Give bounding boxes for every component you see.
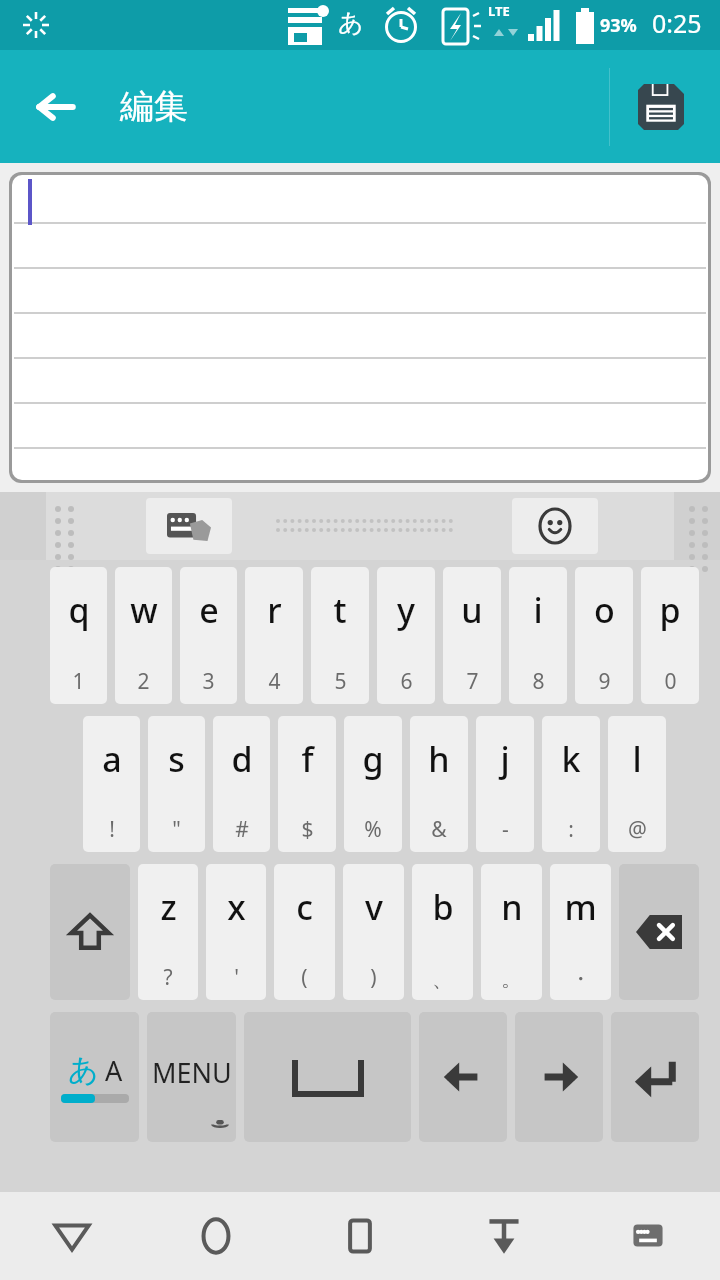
- button[interactable]: v: [343, 864, 404, 1000]
- staticText: 9: [598, 667, 611, 696]
- button[interactable]: g: [344, 716, 402, 852]
- button[interactable]: l: [608, 716, 666, 852]
- staticText: ): [370, 963, 377, 992]
- staticText: 編集: [120, 85, 188, 128]
- staticText: o: [594, 587, 615, 633]
- staticText: 8: [532, 667, 545, 696]
- button[interactable]: Cursor left: [419, 1012, 507, 1142]
- button[interactable]: r: [245, 567, 303, 704]
- button[interactable]: q: [50, 567, 107, 704]
- button[interactable]: MENU: [147, 1012, 236, 1142]
- staticText: 4: [268, 667, 281, 696]
- staticText: ・: [570, 966, 591, 992]
- staticText: t: [333, 587, 347, 633]
- button[interactable]: Keyboard switcher: [576, 1192, 720, 1280]
- staticText: A: [105, 1052, 123, 1089]
- button[interactable]: Switch input language: [50, 1012, 139, 1142]
- staticText: b: [432, 884, 454, 930]
- staticText: r: [267, 587, 282, 633]
- staticText: 3: [202, 667, 215, 696]
- button[interactable]: m: [550, 864, 611, 1000]
- button[interactable]: Save: [622, 68, 700, 146]
- staticText: &: [431, 815, 447, 844]
- staticText: c: [296, 884, 313, 930]
- button[interactable]: j: [476, 716, 534, 852]
- button[interactable]: n: [481, 864, 542, 1000]
- staticText: #: [235, 815, 249, 844]
- staticText: u: [461, 587, 483, 633]
- button[interactable]: w: [115, 567, 172, 704]
- staticText: 5: [334, 667, 347, 696]
- button[interactable]: Space: [244, 1012, 411, 1142]
- button[interactable]: Cursor right: [515, 1012, 603, 1142]
- button[interactable]: y: [377, 567, 435, 704]
- button[interactable]: Home: [144, 1192, 288, 1280]
- button[interactable]: p: [641, 567, 699, 704]
- staticText: あ: [68, 1051, 99, 1089]
- staticText: %: [364, 815, 382, 844]
- button[interactable]: Back: [0, 1192, 144, 1280]
- staticText: MENU: [152, 1054, 232, 1091]
- button[interactable]: c: [274, 864, 335, 1000]
- staticText: 7: [466, 667, 479, 696]
- button[interactable]: f: [278, 716, 336, 852]
- staticText: !: [109, 815, 115, 844]
- button[interactable]: d: [213, 716, 270, 852]
- staticText: d: [231, 736, 253, 782]
- staticText: m: [564, 884, 597, 930]
- staticText: s: [168, 736, 185, 782]
- staticText: ?: [163, 963, 173, 992]
- staticText: (: [301, 963, 308, 992]
- staticText: 6: [400, 667, 413, 696]
- staticText: あ: [338, 7, 364, 38]
- staticText: g: [362, 736, 384, 782]
- button[interactable]: Recents: [288, 1192, 432, 1280]
- button[interactable]: z: [138, 864, 198, 1000]
- staticText: a: [102, 736, 122, 782]
- staticText: 。: [501, 966, 522, 992]
- staticText: y: [397, 587, 415, 633]
- staticText: 1: [72, 667, 85, 696]
- button[interactable]: Handwriting input: [146, 498, 232, 554]
- staticText: 0: [664, 667, 677, 696]
- button[interactable]: Back: [22, 73, 90, 141]
- staticText: v: [365, 884, 383, 930]
- staticText: k: [561, 736, 581, 782]
- staticText: -: [502, 815, 509, 844]
- button[interactable]: Hide keyboard: [432, 1192, 576, 1280]
- button[interactable]: Enter: [611, 1012, 699, 1142]
- staticText: :: [568, 815, 574, 844]
- button[interactable]: u: [443, 567, 501, 704]
- button[interactable]: [12, 175, 708, 480]
- button[interactable]: o: [575, 567, 633, 704]
- staticText: 93%: [600, 13, 637, 38]
- staticText: LTE: [488, 2, 510, 20]
- button[interactable]: Shift: [50, 864, 130, 1000]
- staticText: p: [659, 587, 681, 633]
- staticText: 、: [432, 966, 453, 992]
- staticText: h: [428, 736, 450, 782]
- button[interactable]: a: [83, 716, 140, 852]
- button[interactable]: b: [412, 864, 473, 1000]
- staticText: f: [301, 736, 314, 782]
- button[interactable]: x: [206, 864, 266, 1000]
- staticText: j: [500, 736, 510, 782]
- staticText: 0:25: [652, 6, 702, 40]
- staticText: e: [199, 587, 219, 633]
- staticText: @: [628, 815, 647, 844]
- button[interactable]: e: [180, 567, 237, 704]
- staticText: z: [160, 884, 177, 930]
- staticText: n: [501, 884, 523, 930]
- button[interactable]: h: [410, 716, 468, 852]
- button[interactable]: k: [542, 716, 600, 852]
- staticText: x: [227, 884, 246, 930]
- button[interactable]: Emoji: [512, 498, 598, 554]
- button[interactable]: Backspace: [619, 864, 699, 1000]
- staticText: q: [68, 587, 90, 633]
- button[interactable]: t: [311, 567, 369, 704]
- staticText: 2: [137, 667, 150, 696]
- button[interactable]: s: [148, 716, 205, 852]
- staticText: ': [234, 963, 239, 992]
- button[interactable]: i: [509, 567, 567, 704]
- staticText: ": [172, 815, 181, 844]
